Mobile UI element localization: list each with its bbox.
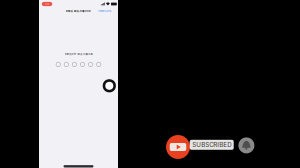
staticText: Введите код-пароль bbox=[64, 52, 92, 56]
button[interactable]: SUBSCRIBED bbox=[190, 140, 234, 150]
button[interactable]: YouTube channel bbox=[166, 135, 190, 159]
button[interactable]: Отменить bbox=[96, 8, 113, 14]
staticText: Ввод код-пароля bbox=[66, 9, 90, 13]
button[interactable]: Notification settings bbox=[238, 137, 254, 153]
staticText: Отменить bbox=[98, 9, 111, 13]
staticText: SUBSCRIBED bbox=[192, 141, 231, 148]
staticText: 0:07 bbox=[45, 3, 49, 5]
